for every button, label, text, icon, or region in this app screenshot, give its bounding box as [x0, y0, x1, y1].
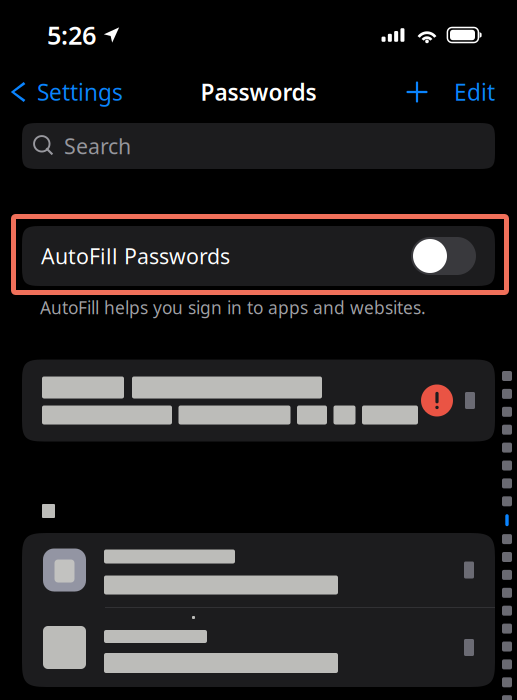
staticText: Settings [37, 77, 123, 107]
button[interactable] [22, 359, 495, 441]
staticText: Edit [454, 77, 495, 107]
staticText: Passwords [200, 77, 316, 107]
button[interactable]: Settings [0, 69, 123, 115]
staticText: 5:26 [47, 18, 96, 52]
staticText: Search [64, 132, 131, 160]
button[interactable]: Search [22, 123, 495, 169]
button[interactable]: Edit [452, 71, 497, 113]
staticText: AutoFill Passwords [41, 242, 230, 270]
button[interactable]: Add Password [399, 74, 435, 110]
staticText: AutoFill helps you sign in to apps and w… [40, 296, 426, 319]
button[interactable] [22, 608, 495, 687]
button[interactable] [22, 533, 495, 607]
button[interactable]: AutoFill Passwords [22, 226, 495, 286]
